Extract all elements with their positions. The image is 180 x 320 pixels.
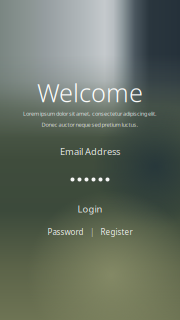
button[interactable]: Password (47, 225, 83, 239)
staticText: | (90, 227, 94, 237)
button[interactable]: Password (0, 169, 180, 189)
button[interactable]: Register (100, 225, 132, 239)
staticText: Donec auctor neque sed pretium luctus. (41, 121, 138, 128)
button[interactable]: Email Address (0, 141, 180, 161)
staticText: Welcome (37, 76, 143, 109)
staticText: Password (47, 227, 83, 237)
staticText: Register (100, 227, 132, 237)
button[interactable]: Login (60, 201, 120, 217)
staticText: Login (77, 203, 102, 215)
staticText: Lorem ipsum dolor sit amet, consectetur … (23, 110, 157, 117)
staticText: Email Address (60, 145, 120, 158)
